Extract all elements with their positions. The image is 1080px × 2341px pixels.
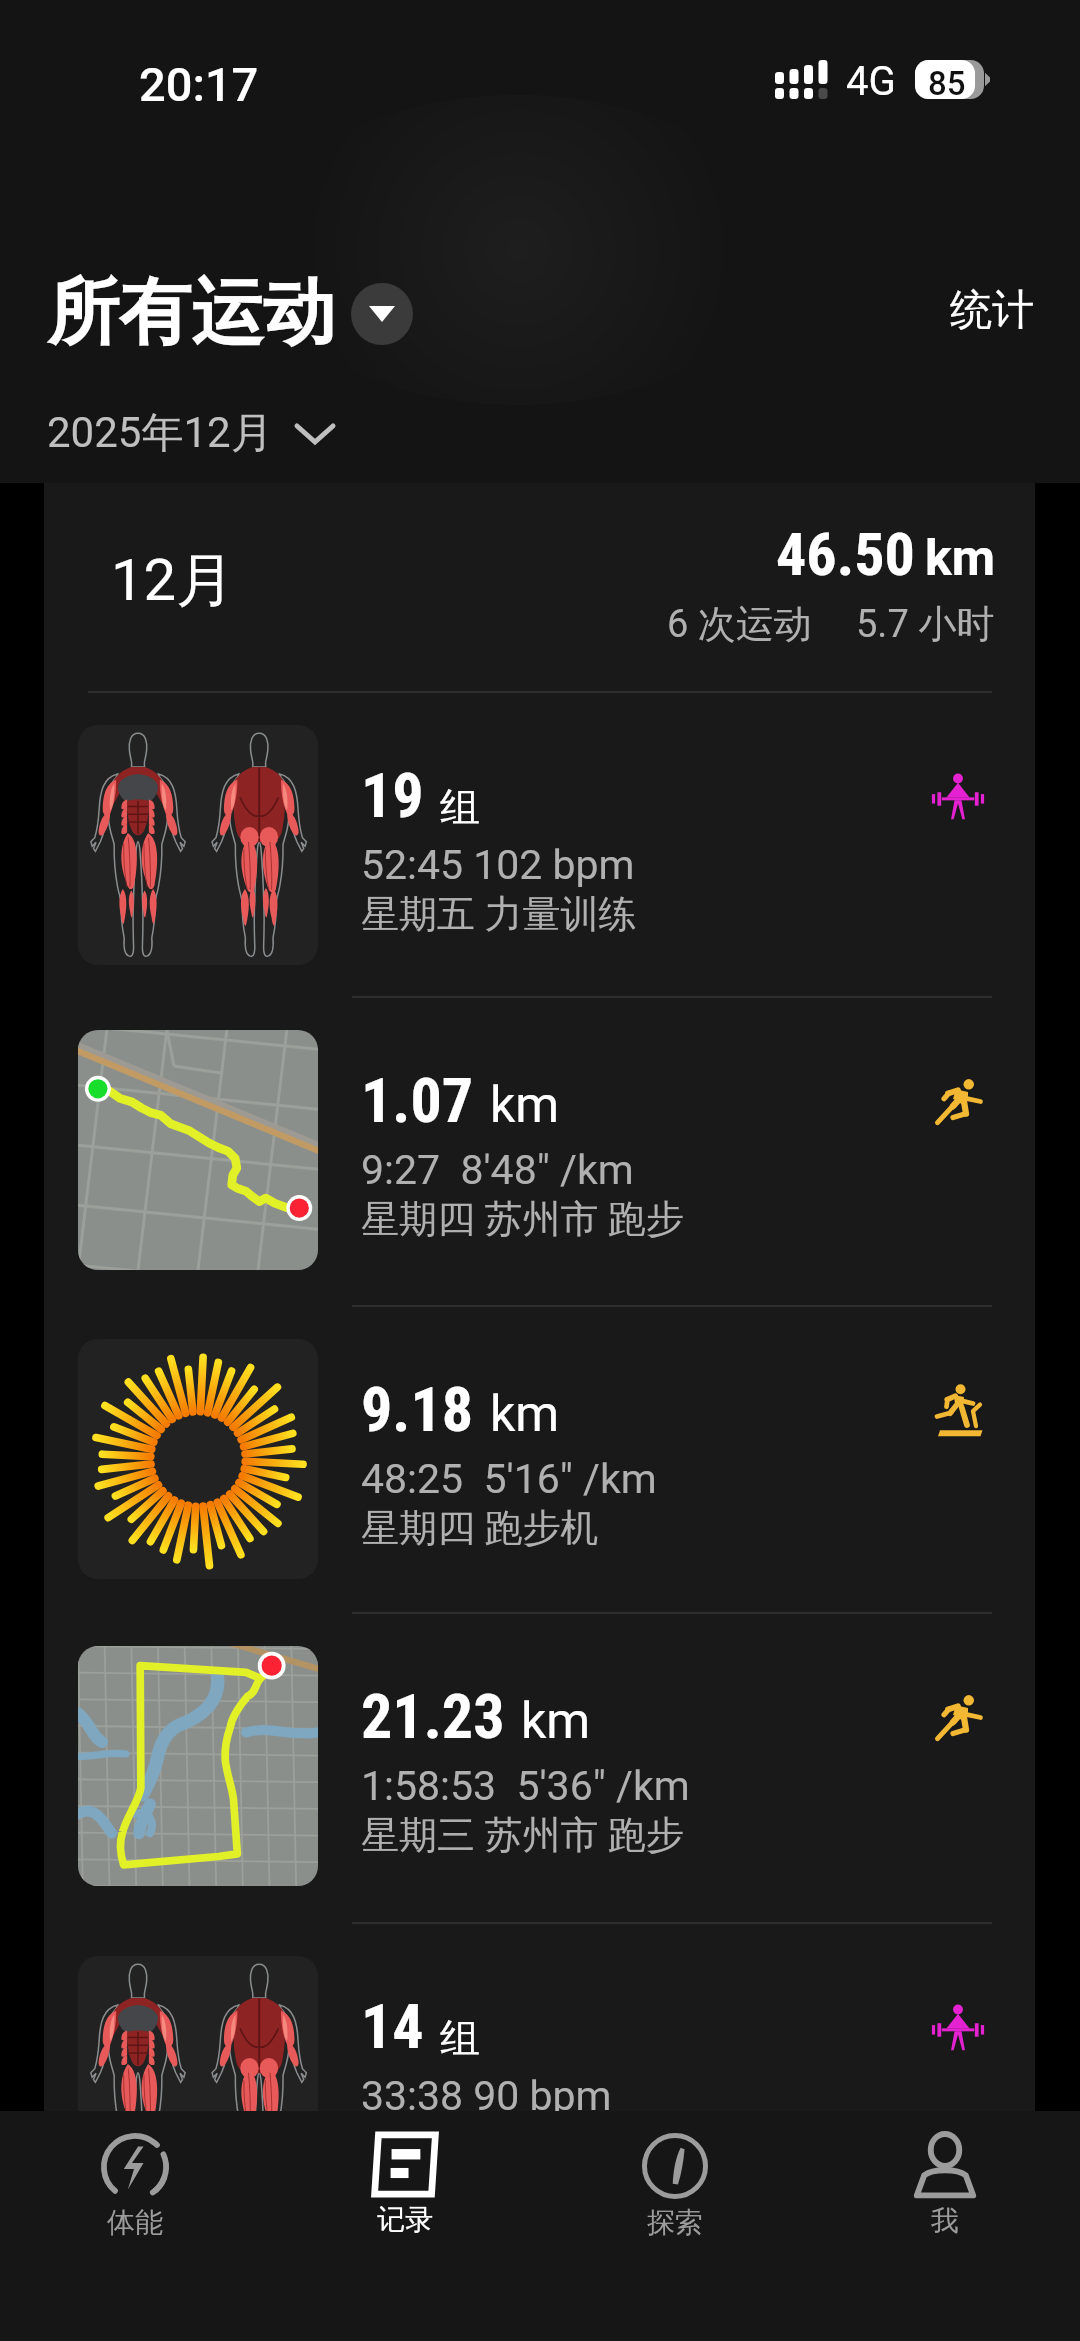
staticText: 星期五 力量训练	[361, 890, 637, 938]
button[interactable]: 19	[44, 691, 1035, 999]
staticText: 52:45 102 bpm	[361, 841, 635, 889]
button[interactable]: 1.07	[44, 996, 1035, 1304]
staticText: 统计	[950, 284, 1034, 337]
button[interactable]: Explore	[540, 2111, 810, 2341]
staticText: 33:38 90 bpm	[361, 2072, 612, 2120]
staticText: 9:27 8'48" /km	[361, 1146, 634, 1194]
staticText: 2025年12月	[47, 407, 273, 460]
button[interactable]: 21.23	[44, 1612, 1035, 1920]
staticText: 探索	[647, 2205, 703, 2240]
button[interactable]: 统计	[928, 272, 1056, 349]
staticText: 星期三 苏州市 跑步	[361, 1811, 684, 1859]
button[interactable]: 2025年12月	[36, 401, 349, 466]
button[interactable]: 9.18	[44, 1305, 1035, 1613]
staticText: 46.50	[776, 519, 915, 589]
button[interactable]: Fitness	[0, 2111, 270, 2341]
staticText: 85	[928, 64, 966, 103]
staticText: km	[521, 1692, 591, 1751]
button[interactable]: 14	[44, 1922, 1035, 2230]
button[interactable]: 所有运动	[36, 260, 427, 367]
staticText: 1:58:53 5'36" /km	[361, 1762, 690, 1810]
staticText: 9.18	[361, 1373, 474, 1446]
other: Treadmill	[933, 1383, 983, 1437]
staticText: 星期二 力量训练	[361, 2121, 637, 2169]
other: Records	[373, 2133, 437, 2196]
staticText: 14	[361, 1990, 424, 2063]
other: Profile	[914, 2133, 976, 2197]
other: Running	[933, 1078, 983, 1125]
staticText: 21.23	[361, 1680, 505, 1753]
staticText: 星期四 苏州市 跑步	[361, 1195, 684, 1243]
other: Running	[933, 1694, 983, 1741]
staticText: 所有运动	[47, 268, 335, 359]
staticText: 5.7 小时	[856, 600, 995, 648]
staticText: 6 次运动	[667, 600, 812, 648]
staticText: 我	[931, 2203, 959, 2238]
other: Fitness	[101, 2133, 169, 2199]
other: Strength training	[929, 2000, 987, 2054]
staticText: 组	[440, 2013, 480, 2063]
staticText: 48:25 5'16" /km	[361, 1455, 657, 1503]
staticText: km	[925, 529, 995, 588]
staticText: 体能	[107, 2205, 163, 2240]
other: Strength training	[929, 769, 987, 823]
button[interactable]: Records	[270, 2111, 540, 2341]
staticText: km	[490, 1076, 560, 1135]
staticText: 19	[361, 759, 424, 832]
staticText: 组	[440, 782, 480, 832]
button[interactable]: Profile	[810, 2111, 1080, 2341]
staticText: 星期四 跑步机	[361, 1504, 599, 1552]
staticText: 20:17	[139, 57, 259, 112]
staticText: 12月	[111, 544, 235, 617]
staticText: km	[490, 1385, 560, 1444]
staticText: 1.07	[361, 1064, 474, 1137]
staticText: 记录	[377, 2202, 433, 2237]
staticText: 4G	[846, 58, 896, 105]
other: Explore	[642, 2133, 708, 2199]
